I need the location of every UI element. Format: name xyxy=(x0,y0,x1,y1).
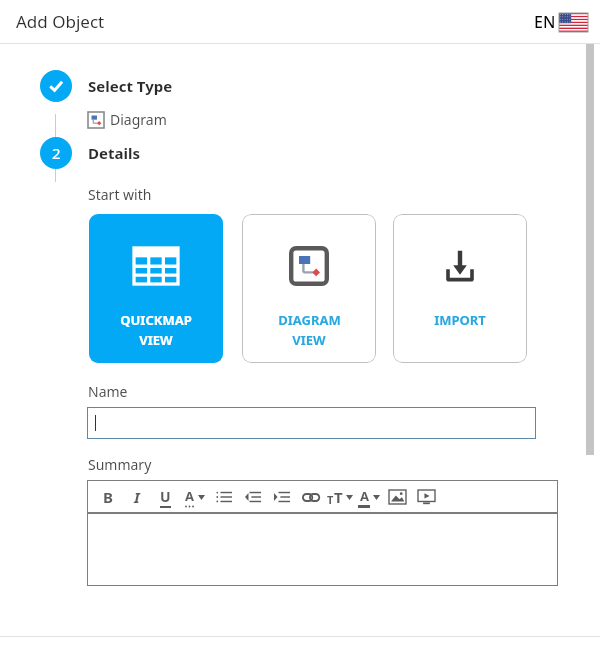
button[interactable]: Increase indent xyxy=(267,482,296,512)
staticText: T xyxy=(334,487,343,507)
staticText: Diagram xyxy=(110,110,167,129)
other: Diagram view xyxy=(289,246,329,286)
other: Import xyxy=(440,246,480,286)
button[interactable]: Italic xyxy=(122,482,151,512)
staticText: Details xyxy=(88,143,140,163)
staticText: I xyxy=(134,487,140,507)
staticText: Select Type xyxy=(88,76,173,96)
button[interactable]: Insert image xyxy=(383,482,412,512)
button[interactable]: Bullet list xyxy=(209,482,238,512)
button[interactable]: Underline xyxy=(151,482,180,512)
button[interactable] xyxy=(87,513,558,586)
button[interactable]: Select Type xyxy=(0,70,600,102)
button[interactable]: Diagram xyxy=(88,110,167,129)
button[interactable]: EN xyxy=(530,7,592,37)
staticText: Summary xyxy=(88,455,152,474)
button[interactable]: 2 xyxy=(0,137,600,169)
button[interactable]: Import xyxy=(393,214,527,363)
staticText: Name xyxy=(88,382,128,401)
button[interactable]: Decrease indent xyxy=(238,482,267,512)
other: Quickmap view xyxy=(134,244,178,288)
staticText: U xyxy=(160,487,171,506)
button[interactable]: Text color xyxy=(180,482,209,512)
button[interactable] xyxy=(87,407,536,439)
staticText: 2 xyxy=(52,143,61,163)
staticText: VIEW xyxy=(139,331,173,349)
staticText: VIEW xyxy=(292,331,326,349)
staticText: Add Object xyxy=(16,10,105,33)
button[interactable]: Highlight color xyxy=(354,482,383,512)
button[interactable]: Insert video xyxy=(412,482,441,512)
staticText: Start with xyxy=(88,185,152,204)
staticText: DIAGRAM xyxy=(278,311,341,329)
button[interactable]: Bold xyxy=(93,482,122,512)
other: English language xyxy=(559,13,588,32)
staticText: IMPORT xyxy=(434,311,486,329)
staticText: A xyxy=(360,487,369,505)
staticText: QUICKMAP xyxy=(120,311,192,329)
button[interactable]: Diagram view xyxy=(242,214,376,363)
button[interactable]: Insert link xyxy=(296,482,325,512)
staticText: A xyxy=(185,487,194,505)
staticText: T xyxy=(327,492,334,507)
staticText: EN xyxy=(534,11,556,33)
button[interactable]: Font size xyxy=(325,482,354,512)
staticText: B xyxy=(103,487,113,507)
button[interactable]: Quickmap view xyxy=(89,214,223,363)
